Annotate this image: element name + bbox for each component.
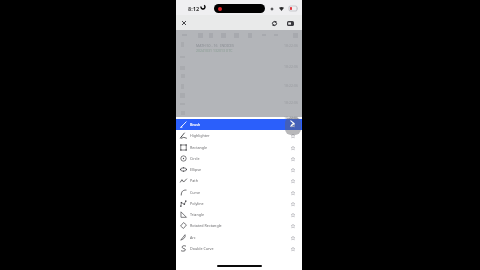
button[interactable]: Triangle	[176, 209, 302, 220]
staticText: Rectangle	[190, 145, 208, 150]
staticText: Rotated Rectangle	[190, 223, 222, 228]
button[interactable]: Rotated Rectangle	[176, 220, 302, 231]
staticText: 18:22:06	[284, 64, 298, 69]
staticText: MATH 50 - 16 INDICES	[196, 43, 234, 48]
staticText: 18:22:06	[284, 83, 298, 88]
staticText: Circle	[190, 156, 200, 161]
staticText: Brush	[190, 122, 201, 127]
staticText: 18:22:06	[284, 115, 298, 120]
button[interactable]: Next	[285, 117, 301, 135]
button[interactable]: Double Curve	[176, 243, 302, 254]
staticText: Highlighter	[190, 133, 210, 138]
button[interactable]: Curve	[176, 187, 302, 198]
staticText: Double Curve	[190, 246, 214, 251]
button[interactable]: Present	[285, 18, 295, 28]
staticText: 8:12	[188, 5, 200, 13]
button[interactable]: Polyline	[176, 198, 302, 209]
button[interactable]: Refresh	[269, 18, 279, 28]
button[interactable]: Brush	[176, 119, 302, 130]
button[interactable]: Arc	[176, 232, 302, 243]
button[interactable]: Path	[176, 175, 302, 186]
staticText: Curve	[190, 190, 201, 195]
staticText: Polyline	[190, 201, 204, 206]
button[interactable]: Highlighter	[176, 130, 302, 141]
staticText: 20241031 132013 UTC	[196, 48, 233, 53]
staticText: 18:22:06	[284, 43, 298, 48]
button[interactable]: Close	[179, 18, 189, 28]
staticText: 18:22:06	[284, 100, 298, 105]
staticText: Triangle	[190, 212, 204, 217]
button[interactable]: Ellipse	[176, 164, 302, 175]
staticText: Ellipse	[190, 167, 202, 172]
staticText: Path	[190, 178, 198, 183]
button[interactable]: Rectangle	[176, 142, 302, 153]
staticText: Arc	[190, 235, 196, 240]
button[interactable]: Circle	[176, 153, 302, 164]
